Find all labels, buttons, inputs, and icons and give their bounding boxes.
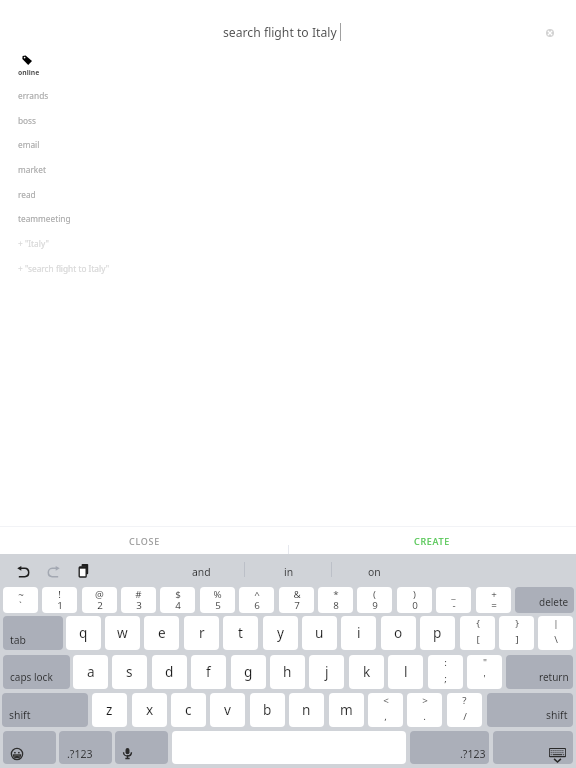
staticText: 2 — [97, 599, 103, 612]
button[interactable]: Hide keyboard — [493, 731, 573, 764]
button[interactable]: online — [16, 50, 76, 78]
button[interactable]: q — [66, 616, 101, 650]
button[interactable]: { — [460, 616, 495, 650]
button[interactable]: ? — [447, 693, 482, 727]
button[interactable]: ~ — [3, 587, 38, 613]
button[interactable]: caps lock — [3, 655, 70, 689]
button[interactable]: c — [171, 693, 206, 727]
button[interactable]: > — [407, 693, 442, 727]
button[interactable]: ! — [42, 587, 77, 613]
button[interactable]: g — [231, 655, 266, 689]
button[interactable]: p — [420, 616, 455, 650]
button[interactable]: u — [302, 616, 337, 650]
button[interactable]: on — [331, 554, 418, 586]
staticText: g — [244, 662, 253, 681]
button[interactable]: in — [245, 554, 332, 586]
button[interactable]: v — [210, 693, 245, 727]
button[interactable]: ^ — [239, 587, 274, 613]
button[interactable]: x — [132, 693, 167, 727]
button[interactable]: e — [144, 616, 179, 650]
staticText: o — [394, 623, 403, 642]
button[interactable]: CLOSE — [0, 527, 288, 554]
button[interactable]: Undo — [13, 561, 34, 581]
button[interactable]: CREATE — [288, 527, 576, 554]
button[interactable]: n — [289, 693, 324, 727]
button[interactable]: return — [506, 655, 573, 689]
button[interactable]: .?123 — [59, 731, 112, 764]
button[interactable]: w — [105, 616, 140, 650]
button[interactable]: _ — [436, 587, 471, 613]
staticText: j — [325, 662, 329, 681]
button[interactable]: @ — [82, 587, 117, 613]
button[interactable]: y — [263, 616, 298, 650]
button[interactable]: shift — [487, 693, 573, 727]
button[interactable]: a — [73, 655, 108, 689]
button[interactable]: .?123 — [410, 731, 489, 764]
button[interactable]: t — [223, 616, 258, 650]
button[interactable]: b — [250, 693, 285, 727]
button[interactable]: and — [158, 554, 245, 586]
button[interactable]: tab — [3, 616, 63, 650]
button[interactable]: i — [341, 616, 376, 650]
button[interactable]: * — [318, 587, 353, 613]
staticText: ' — [483, 672, 486, 685]
staticText: b — [263, 700, 272, 719]
staticText: email — [18, 139, 40, 150]
button[interactable]: + "Italy" — [14, 233, 144, 253]
button[interactable]: h — [270, 655, 305, 689]
staticText: s — [126, 662, 133, 681]
button[interactable]: search flight to Italy — [200, 18, 376, 46]
button[interactable]: d — [152, 655, 187, 689]
button[interactable]: delete — [515, 587, 574, 613]
button[interactable]: } — [499, 616, 534, 650]
button[interactable]: j — [309, 655, 344, 689]
button[interactable]: k — [349, 655, 384, 689]
staticText: { — [476, 617, 480, 630]
button[interactable]: errands — [14, 85, 144, 105]
button[interactable]: < — [368, 693, 403, 727]
staticText: h — [283, 662, 292, 681]
button[interactable]: teammeeting — [14, 208, 144, 228]
staticText: . — [423, 710, 426, 723]
staticText: l — [404, 662, 408, 681]
button[interactable]: Paste — [74, 560, 94, 581]
button[interactable]: " — [467, 655, 502, 689]
button[interactable]: Emoji keyboard — [3, 731, 56, 764]
button[interactable]: o — [381, 616, 416, 650]
button[interactable]: & — [279, 587, 314, 613]
button[interactable]: : — [428, 655, 463, 689]
button[interactable]: % — [200, 587, 235, 613]
button[interactable]: ( — [357, 587, 392, 613]
staticText: online — [18, 68, 40, 77]
button[interactable]: email — [14, 134, 144, 154]
button[interactable]: ) — [397, 587, 432, 613]
staticText: t — [238, 623, 243, 642]
staticText: i — [357, 623, 361, 642]
button[interactable]: f — [191, 655, 226, 689]
button[interactable]: z — [92, 693, 127, 727]
button[interactable]: m — [329, 693, 364, 727]
staticText: delete — [539, 595, 569, 609]
button[interactable]: r — [184, 616, 219, 650]
button[interactable]: Voice input — [115, 731, 168, 764]
button[interactable]: read — [14, 184, 144, 204]
button[interactable]: Redo — [43, 561, 64, 581]
staticText: : — [444, 656, 447, 669]
staticText: caps lock — [10, 670, 53, 684]
button[interactable]: + "search flight to Italy" — [14, 258, 144, 278]
staticText: u — [315, 623, 324, 642]
button[interactable]: boss — [14, 110, 144, 130]
button[interactable]: l — [388, 655, 423, 689]
button[interactable]: | — [538, 616, 573, 650]
button[interactable]: + — [476, 587, 511, 613]
button[interactable]: s — [112, 655, 147, 689]
staticText: + "search flight to Italy" — [18, 263, 110, 274]
button[interactable]: $ — [160, 587, 195, 613]
button[interactable]: Clear text — [540, 23, 559, 42]
button[interactable]: shift — [2, 693, 88, 727]
button[interactable]: market — [14, 159, 144, 179]
staticText: - — [452, 599, 456, 612]
staticText: ^ — [254, 588, 260, 601]
button[interactable]: # — [121, 587, 156, 613]
